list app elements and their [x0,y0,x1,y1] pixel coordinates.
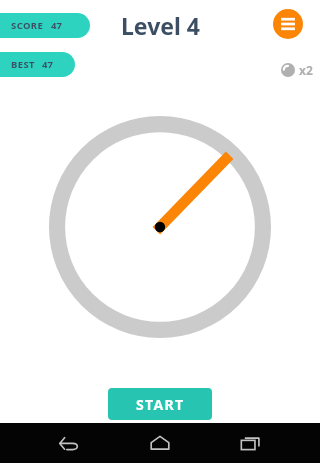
button[interactable]: Back [47,423,91,463]
staticText: 47 [51,19,62,32]
staticText: SCORE [11,19,44,32]
button[interactable]: SCORE [0,13,90,38]
button[interactable]: START [108,388,212,420]
staticText: Level 4 [121,10,200,41]
button[interactable]: Home [138,423,182,463]
staticText: 47 [42,58,53,71]
button[interactable]: BEST [0,52,75,77]
button[interactable]: Menu [273,9,303,39]
button[interactable]: Recents [229,423,273,463]
staticText: START [136,395,185,414]
staticText: BEST [11,58,35,71]
button[interactable]: Ball multiplier x2 [281,62,313,78]
staticText: x2 [299,62,313,78]
